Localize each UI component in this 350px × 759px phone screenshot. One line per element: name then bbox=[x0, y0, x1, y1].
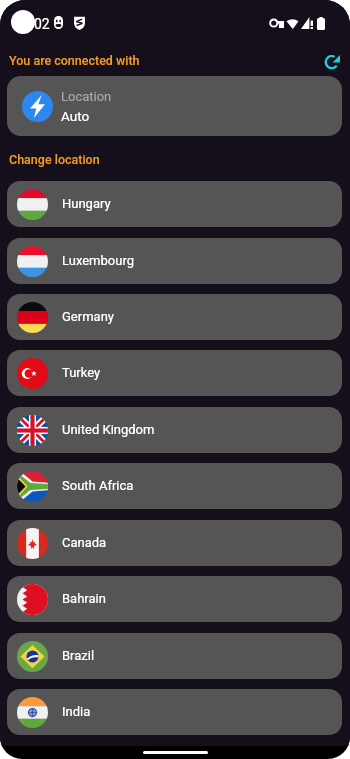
staticText: Location bbox=[61, 89, 112, 104]
button[interactable]: South Africa bbox=[7, 463, 342, 509]
staticText: Germany bbox=[62, 309, 114, 324]
staticText: Turkey bbox=[62, 365, 101, 380]
staticText: South Africa bbox=[62, 478, 134, 493]
button[interactable]: Location bbox=[7, 76, 342, 136]
staticText: Brazil bbox=[62, 648, 95, 663]
button[interactable]: Hungary bbox=[7, 181, 342, 227]
staticText: United Kingdom bbox=[62, 422, 155, 437]
staticText: You are connected with bbox=[9, 53, 140, 68]
staticText: 02 bbox=[34, 16, 50, 32]
staticText: Canada bbox=[62, 535, 107, 550]
button[interactable]: India bbox=[7, 689, 342, 735]
button[interactable]: Canada bbox=[7, 520, 342, 566]
button[interactable]: United Kingdom bbox=[7, 407, 342, 453]
staticText: India bbox=[62, 704, 91, 719]
staticText: Change location bbox=[9, 152, 100, 167]
staticText: Hungary bbox=[62, 196, 111, 211]
staticText: Auto bbox=[61, 108, 90, 124]
button[interactable]: Turkey bbox=[7, 350, 342, 396]
button[interactable]: Brazil bbox=[7, 633, 342, 679]
button[interactable]: Germany bbox=[7, 294, 342, 340]
button[interactable]: Luxembourg bbox=[7, 238, 342, 284]
staticText: Bahrain bbox=[62, 591, 106, 606]
button[interactable]: Refresh bbox=[321, 50, 345, 74]
staticText: Luxembourg bbox=[62, 253, 134, 268]
button[interactable]: Bahrain bbox=[7, 576, 342, 622]
